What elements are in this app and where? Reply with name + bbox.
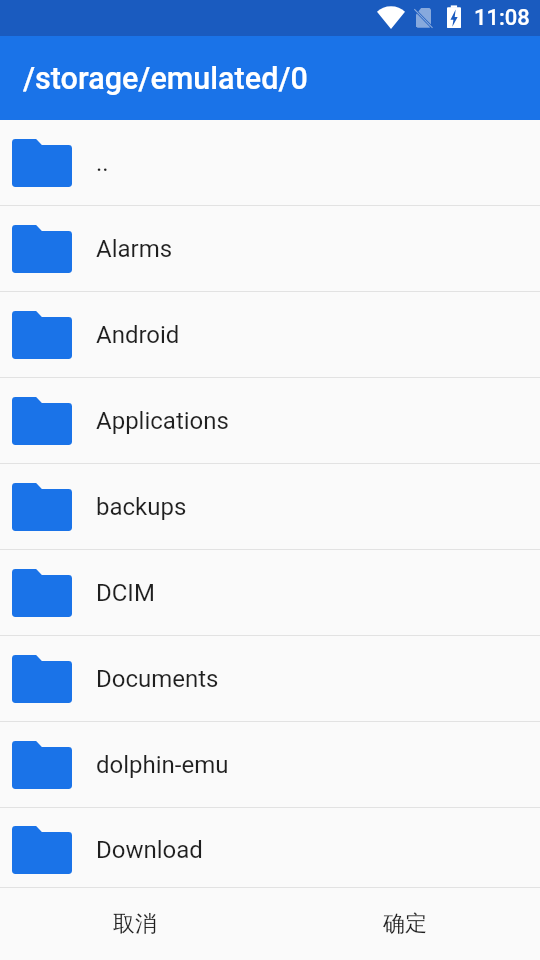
button[interactable]: 确定 — [270, 888, 540, 960]
button[interactable]: /storage/emulated/0 — [0, 36, 540, 120]
button[interactable]: Applications — [0, 378, 540, 463]
staticText: Android — [96, 321, 180, 349]
staticText: Applications — [96, 407, 229, 435]
button[interactable]: Android — [0, 292, 540, 377]
button[interactable]: 取消 — [0, 888, 270, 960]
other: Battery charging — [447, 0, 461, 36]
staticText: backups — [96, 493, 187, 521]
staticText: .. — [96, 149, 109, 177]
other: No SIM card — [416, 0, 431, 36]
button[interactable]: .. — [0, 120, 540, 205]
button[interactable]: backups — [0, 464, 540, 549]
staticText: Download — [96, 836, 203, 864]
staticText: dolphin-emu — [96, 751, 229, 779]
button[interactable]: Download — [0, 812, 540, 887]
staticText: 确定 — [383, 910, 427, 938]
staticText: /storage/emulated/0 — [23, 61, 308, 97]
button[interactable]: dolphin-emu — [0, 722, 540, 807]
staticText: Documents — [96, 665, 219, 693]
staticText: DCIM — [96, 579, 155, 607]
button[interactable]: Documents — [0, 636, 540, 721]
button[interactable]: DCIM — [0, 550, 540, 635]
staticText: Alarms — [96, 235, 173, 263]
button[interactable]: Alarms — [0, 206, 540, 291]
other: Wi-Fi — [377, 0, 405, 36]
staticText: 11:08 — [474, 5, 530, 31]
staticText: 取消 — [113, 910, 157, 938]
